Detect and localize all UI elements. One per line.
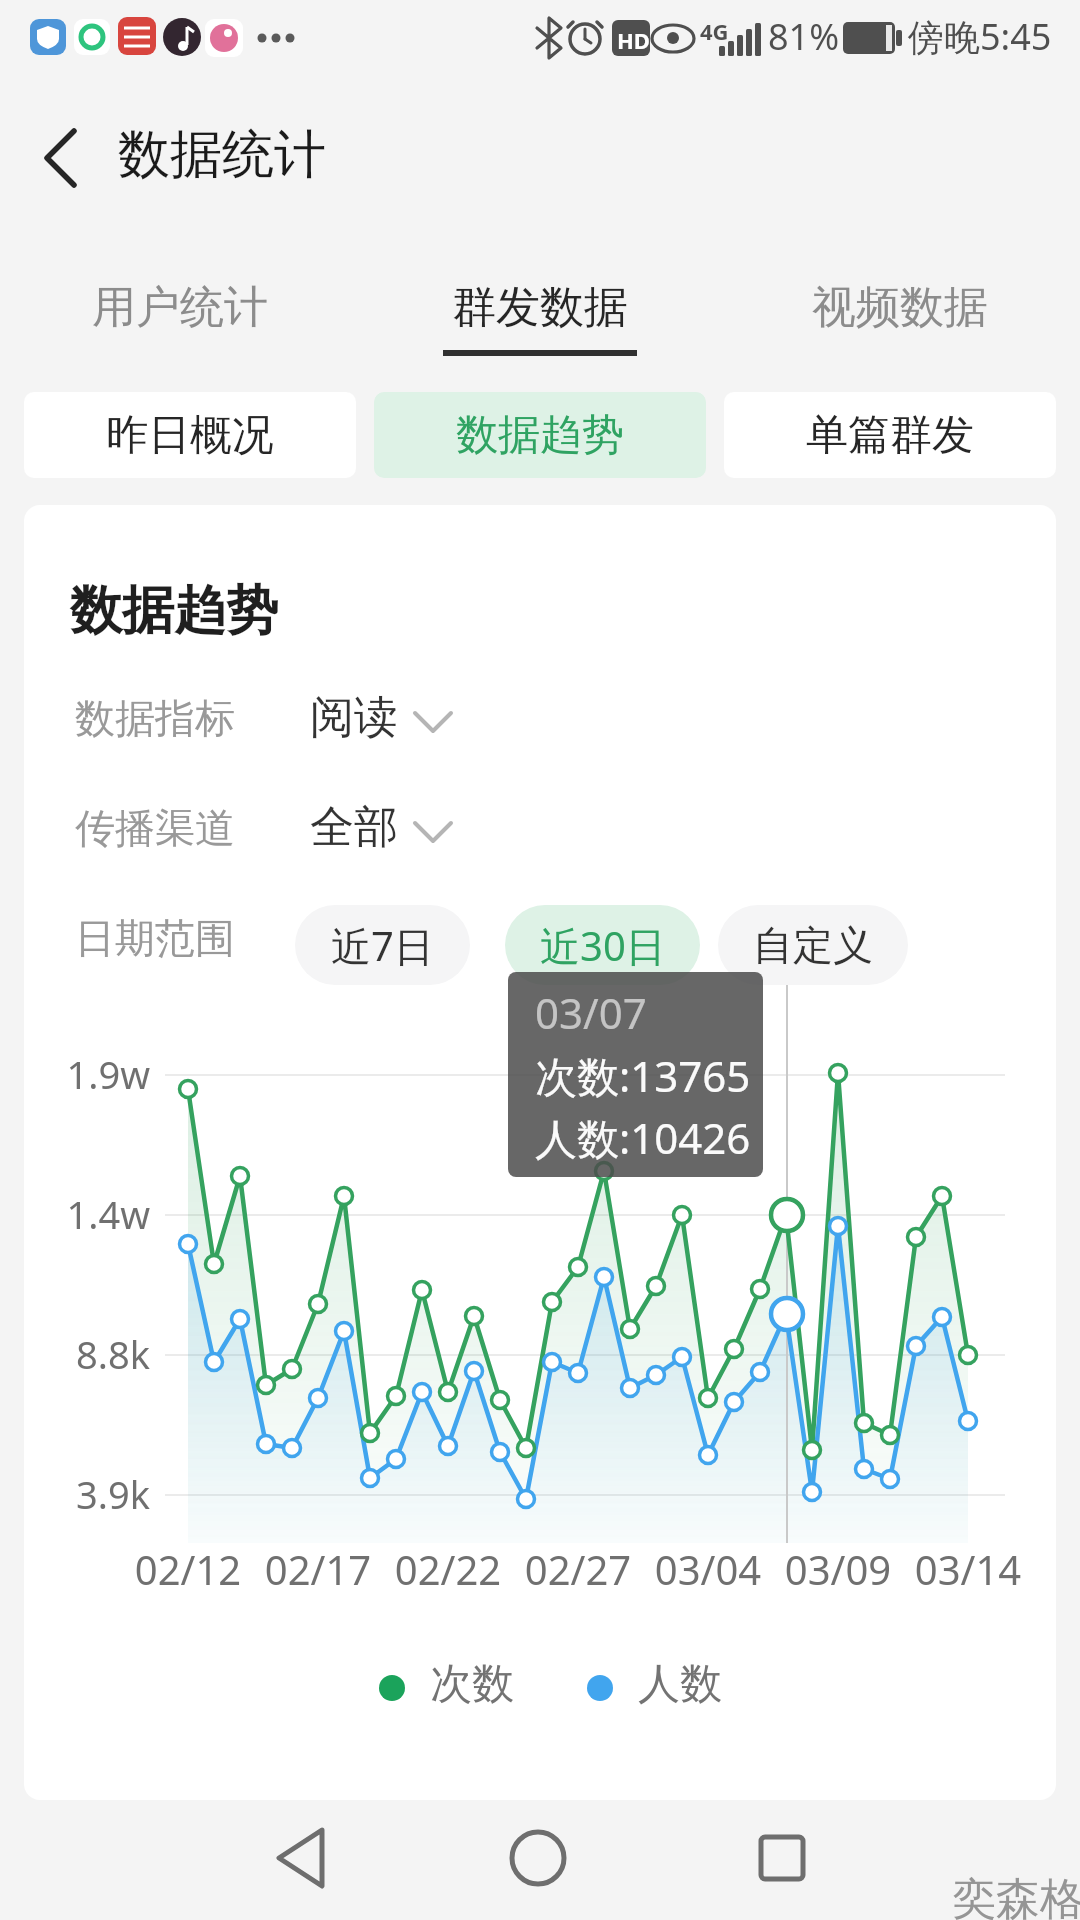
staticText: 日期范围 xyxy=(75,913,235,963)
button[interactable]: 近30日 xyxy=(505,905,700,985)
button[interactable] xyxy=(488,1810,588,1906)
staticText: 03/14 xyxy=(898,1542,1038,1920)
staticText: 近7日 xyxy=(331,918,434,973)
staticText: 03/07 xyxy=(535,984,647,1041)
staticText: 用户统计 xyxy=(92,280,268,335)
staticText: HD xyxy=(617,25,650,55)
staticText: 阅读 xyxy=(310,690,398,745)
staticText: 03/04 xyxy=(638,1542,778,1920)
button[interactable]: 近7日 xyxy=(295,905,470,985)
button[interactable] xyxy=(260,1810,360,1906)
staticText: 02/17 xyxy=(248,1542,388,1920)
staticText: 02/22 xyxy=(378,1542,518,1920)
staticText: 昨日概况 xyxy=(106,409,274,462)
staticText: 数据统计 xyxy=(118,122,326,188)
staticText: 次数 xyxy=(430,1658,514,1711)
button[interactable]: 群发数据 xyxy=(360,262,720,352)
staticText: 单篇群发 xyxy=(806,409,974,462)
button[interactable] xyxy=(578,1650,748,1726)
staticText: 次数:13765 xyxy=(535,1047,751,1104)
button[interactable]: 单篇群发 xyxy=(724,392,1056,478)
button[interactable]: 阅读 xyxy=(296,680,466,760)
staticText: 自定义 xyxy=(753,920,873,970)
staticText: 81% xyxy=(768,12,840,61)
staticText: 近30日 xyxy=(540,918,666,973)
staticText: 03/09 xyxy=(768,1542,908,1920)
button[interactable] xyxy=(370,1650,540,1726)
staticText: 视频数据 xyxy=(812,280,988,335)
staticText: 4G xyxy=(700,16,729,46)
button[interactable]: 昨日概况 xyxy=(24,392,356,478)
staticText: 8.8k xyxy=(56,1328,150,1920)
staticText: 数据指标 xyxy=(75,693,235,743)
button[interactable] xyxy=(732,1810,832,1906)
button[interactable]: 自定义 xyxy=(718,905,908,985)
button[interactable]: 全部 xyxy=(296,790,466,870)
button[interactable]: 用户统计 xyxy=(0,262,360,352)
staticText: 3.9k xyxy=(56,1468,150,1920)
staticText: 人数:10426 xyxy=(535,1109,751,1166)
staticText: 全部 xyxy=(310,800,398,855)
staticText: 群发数据 xyxy=(452,280,628,335)
button[interactable] xyxy=(30,130,90,190)
staticText: 02/12 xyxy=(118,1542,258,1920)
staticText: 傍晚5:45 xyxy=(908,12,1052,61)
staticText: 奕森格 xyxy=(952,1872,1080,1920)
button[interactable]: 数据趋势 xyxy=(374,392,706,478)
staticText: 人数 xyxy=(638,1658,722,1711)
staticText: 1.9w xyxy=(56,1048,150,1920)
button[interactable]: 视频数据 xyxy=(720,262,1080,352)
staticText: 1.4w xyxy=(56,1188,150,1920)
staticText: 传播渠道 xyxy=(75,803,235,853)
staticText: 数据趋势 xyxy=(456,409,624,462)
staticText: 数据趋势 xyxy=(70,578,278,644)
staticText: 02/27 xyxy=(508,1542,648,1920)
